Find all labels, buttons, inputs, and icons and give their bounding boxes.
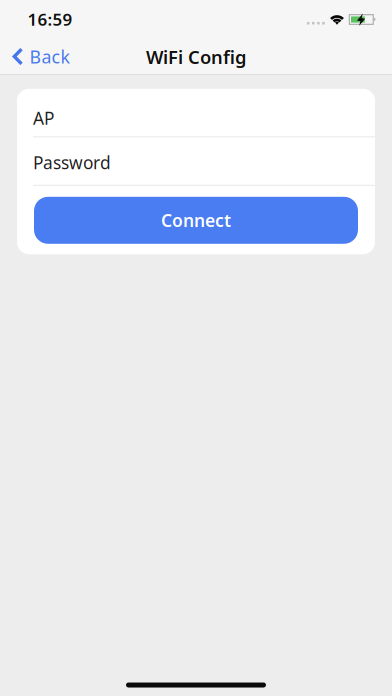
staticText: Password xyxy=(33,151,111,174)
button[interactable]: Connect xyxy=(34,197,358,244)
staticText: 16:59 xyxy=(27,8,72,30)
staticText: WiFi Config xyxy=(146,45,246,69)
staticText: AP xyxy=(33,106,54,129)
button[interactable]: Back xyxy=(0,45,69,68)
staticText: Back xyxy=(29,45,69,68)
staticText: Connect xyxy=(161,209,231,232)
button[interactable]: AP text field xyxy=(17,89,375,136)
button[interactable]: Password text field xyxy=(17,137,375,185)
